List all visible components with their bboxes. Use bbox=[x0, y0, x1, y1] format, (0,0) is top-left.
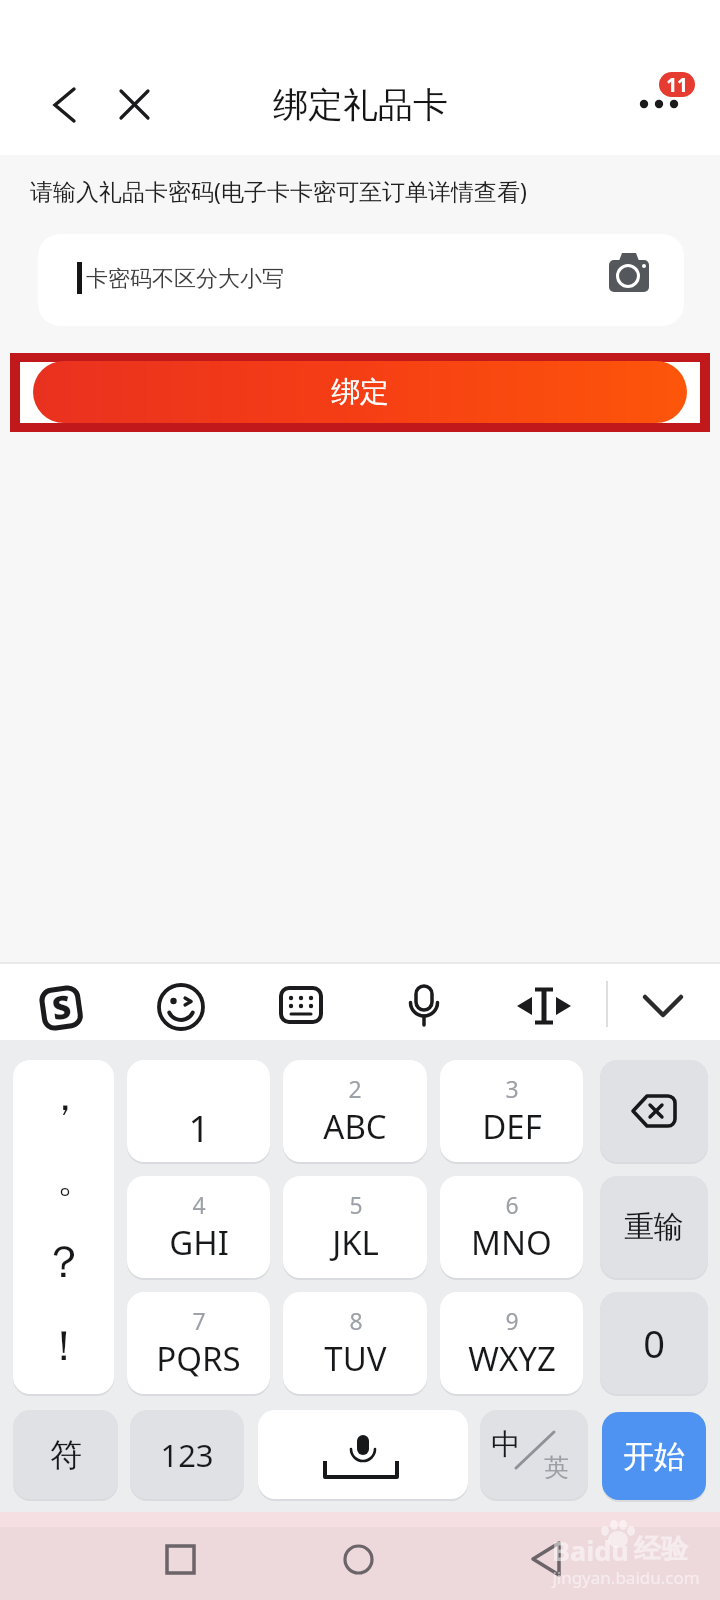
button[interactable]: 符 bbox=[13, 1410, 118, 1499]
staticText: 绑定礼品卡 bbox=[273, 83, 448, 127]
staticText: 5 bbox=[349, 1189, 363, 1220]
button[interactable]: 8 bbox=[283, 1292, 427, 1394]
staticText: 请输入礼品卡密码(电子卡卡密可至订单详情查看) bbox=[30, 175, 527, 206]
staticText: JKL bbox=[332, 1220, 379, 1265]
button[interactable] bbox=[408, 984, 440, 1030]
staticText: ， bbox=[45, 1071, 85, 1121]
staticText: WXYZ bbox=[468, 1336, 556, 1381]
staticText: S bbox=[49, 984, 74, 1030]
button[interactable] bbox=[600, 1060, 708, 1162]
button[interactable]: 4 bbox=[127, 1176, 270, 1278]
button[interactable]: 重输 bbox=[600, 1176, 708, 1278]
staticText: 8 bbox=[349, 1305, 363, 1336]
button[interactable]: 6 bbox=[440, 1176, 583, 1278]
button[interactable]: 9 bbox=[440, 1292, 583, 1394]
button[interactable] bbox=[605, 249, 653, 297]
button[interactable] bbox=[516, 986, 572, 1026]
staticText: 卡密码不区分大小写 bbox=[86, 265, 284, 293]
staticText: 123 bbox=[160, 1434, 214, 1476]
button[interactable] bbox=[279, 986, 323, 1024]
staticText: MNO bbox=[471, 1220, 552, 1265]
button[interactable] bbox=[114, 85, 154, 125]
staticText: Baidu bbox=[552, 1532, 629, 1569]
button[interactable]: 3 bbox=[440, 1060, 583, 1162]
staticText: 2 bbox=[348, 1073, 362, 1104]
staticText: 开始 bbox=[623, 1437, 685, 1476]
staticText: 11 bbox=[666, 72, 688, 97]
button[interactable]: 7 bbox=[127, 1292, 270, 1394]
button[interactable]: 中 bbox=[480, 1410, 588, 1499]
button[interactable] bbox=[530, 1540, 562, 1578]
staticText: ABC bbox=[323, 1104, 387, 1149]
staticText: 。 bbox=[57, 1155, 95, 1203]
staticText: 3 bbox=[505, 1073, 519, 1104]
staticText: 符 bbox=[50, 1435, 82, 1475]
button[interactable] bbox=[641, 990, 685, 1020]
button[interactable] bbox=[157, 983, 205, 1031]
staticText: TUV bbox=[324, 1336, 387, 1381]
staticText: 4 bbox=[192, 1189, 206, 1220]
button[interactable] bbox=[343, 1544, 374, 1575]
button[interactable] bbox=[38, 234, 684, 326]
button[interactable] bbox=[634, 94, 684, 114]
staticText: 0 bbox=[643, 1317, 665, 1369]
staticText: jingyan.baidu.com bbox=[552, 1566, 700, 1589]
button[interactable] bbox=[45, 85, 85, 125]
staticText: GHI bbox=[169, 1220, 229, 1265]
button[interactable] bbox=[258, 1410, 468, 1499]
button[interactable] bbox=[165, 1544, 196, 1575]
staticText: 9 bbox=[505, 1305, 519, 1336]
staticText: DEF bbox=[482, 1104, 542, 1149]
button[interactable]: 开始 bbox=[602, 1412, 706, 1500]
staticText: 重输 bbox=[624, 1208, 684, 1246]
staticText: 1 bbox=[188, 1102, 210, 1152]
staticText: PQRS bbox=[156, 1336, 241, 1381]
button[interactable]: S bbox=[36, 981, 86, 1033]
button[interactable]: 5 bbox=[283, 1176, 427, 1278]
button[interactable]: ， bbox=[13, 1060, 114, 1394]
button[interactable]: 2 bbox=[283, 1060, 427, 1162]
staticText: ？ bbox=[42, 1235, 86, 1290]
staticText: 中 bbox=[491, 1426, 520, 1463]
staticText: 6 bbox=[505, 1189, 519, 1220]
button[interactable]: 绑定 bbox=[33, 361, 687, 423]
staticText: 7 bbox=[192, 1305, 206, 1336]
button[interactable]: 1 bbox=[127, 1060, 270, 1162]
staticText: ！ bbox=[43, 1320, 85, 1373]
staticText: 绑定 bbox=[331, 374, 389, 411]
staticText: 经验 bbox=[634, 1532, 688, 1566]
staticText: 英 bbox=[544, 1452, 569, 1483]
button[interactable]: 0 bbox=[600, 1292, 708, 1394]
button[interactable]: 123 bbox=[130, 1410, 244, 1499]
